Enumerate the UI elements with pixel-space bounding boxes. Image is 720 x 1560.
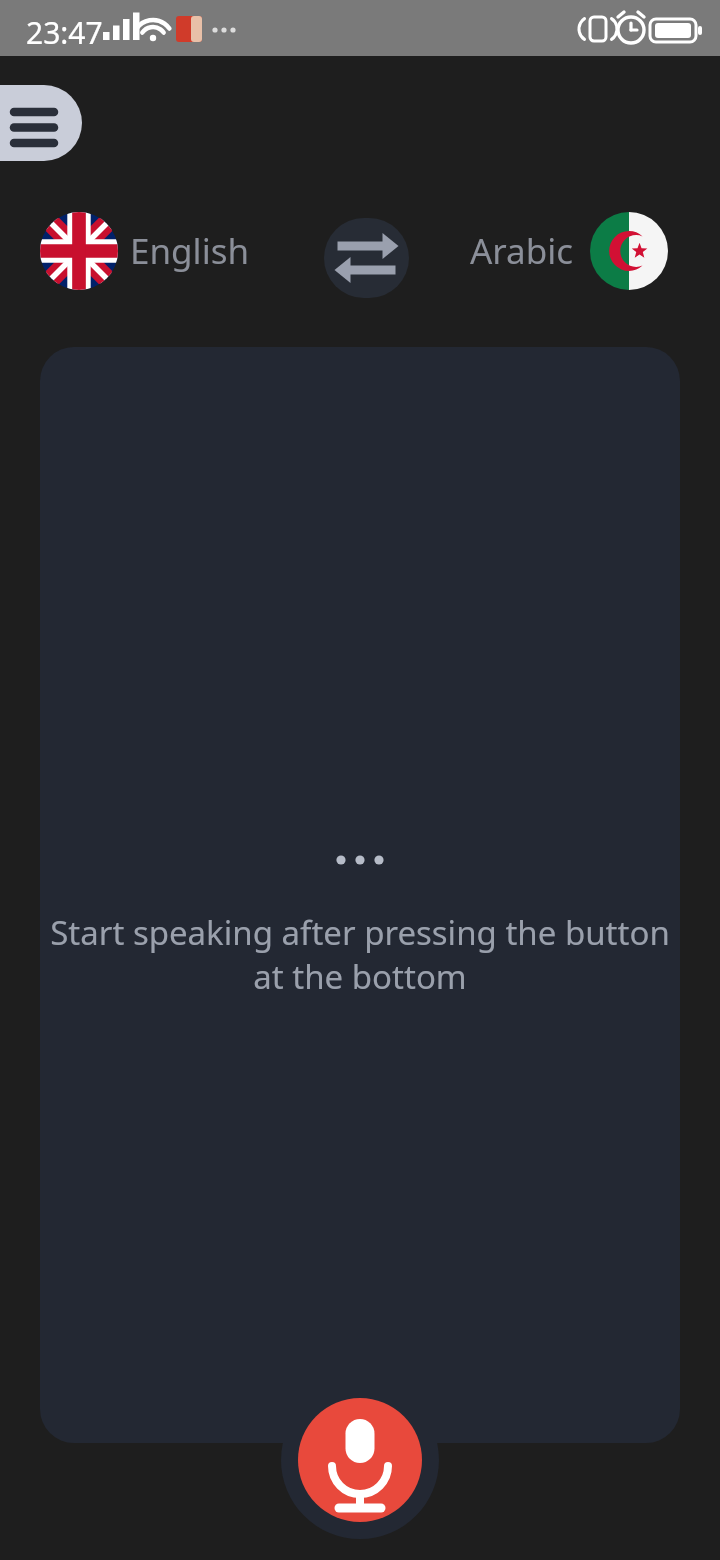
- staticText: 23:47: [26, 12, 103, 53]
- button[interactable]: Start recording: [298, 1398, 422, 1522]
- button[interactable]: English: [40, 211, 250, 291]
- staticText: English: [130, 227, 250, 275]
- button[interactable]: Arabic: [470, 211, 668, 291]
- staticText: Start speaking after pressing the button…: [38, 910, 682, 998]
- staticText: Arabic: [470, 227, 574, 275]
- button[interactable]: Menu: [0, 85, 82, 161]
- button[interactable]: Swap languages: [324, 218, 409, 298]
